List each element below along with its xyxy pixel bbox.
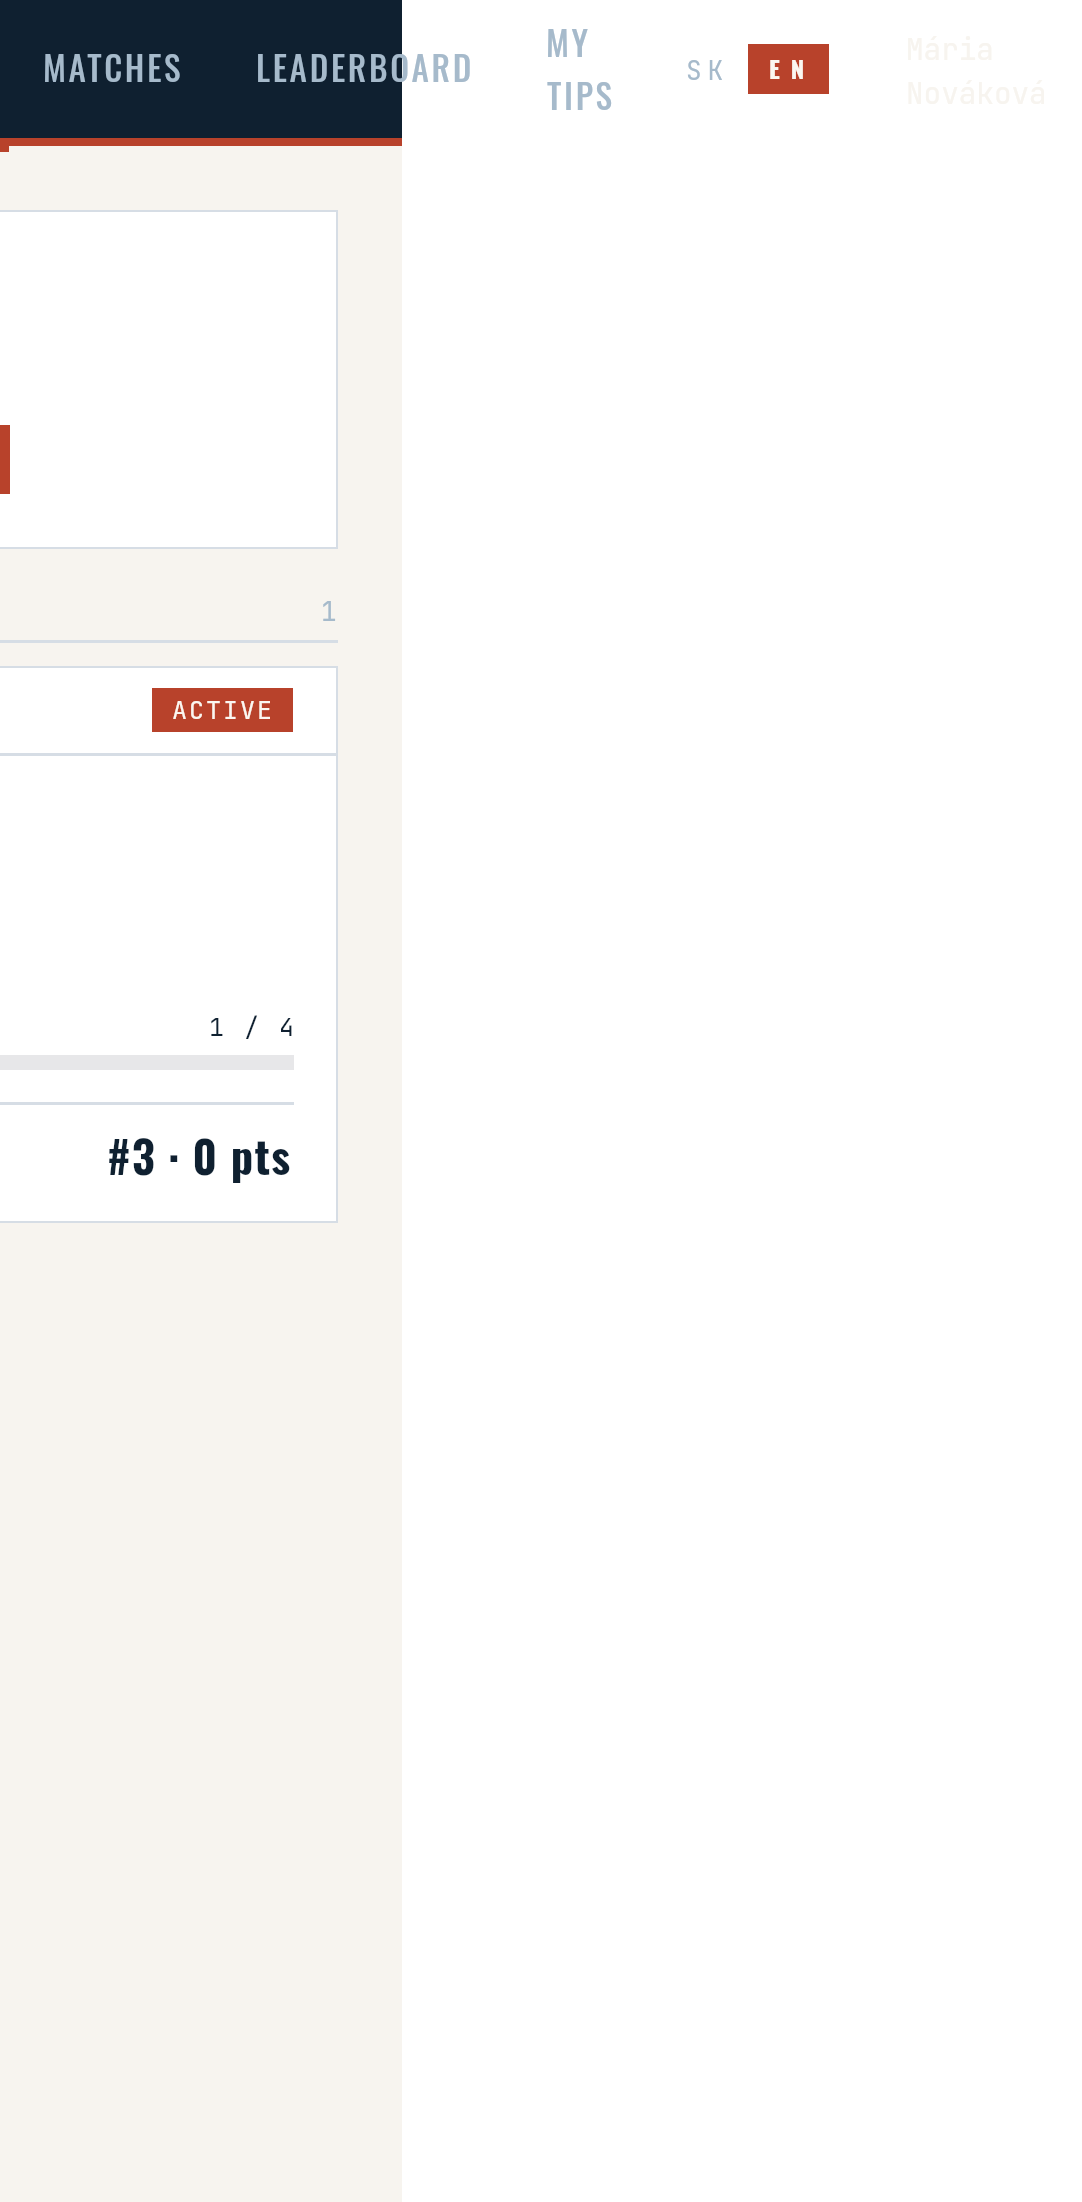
staticText: SK [686,53,730,87]
staticText: 1 [321,594,337,628]
button[interactable]: EN [748,44,829,94]
staticText: ACTIVE [172,693,275,726]
button[interactable]: SK [666,44,728,96]
staticText: #3 · 0 pts [107,1122,292,1188]
button[interactable]: LEADERBOARD [233,28,491,108]
button[interactable]: Mária [890,18,1062,118]
button[interactable]: MATCHES [20,28,204,108]
staticText: Nováková [906,74,1047,113]
staticText: TIPS [547,69,615,119]
staticText: EN [769,50,816,86]
staticText: Mária [906,30,994,69]
staticText: MY [546,16,591,66]
button[interactable] [0,210,338,549]
staticText: MATCHES [43,41,184,91]
button[interactable]: 1 [300,580,348,628]
staticText: LEADERBOARD [256,41,474,91]
button[interactable]: MY [523,4,633,132]
staticText: 1 / 4 [209,1010,297,1043]
button[interactable] [0,666,338,1223]
